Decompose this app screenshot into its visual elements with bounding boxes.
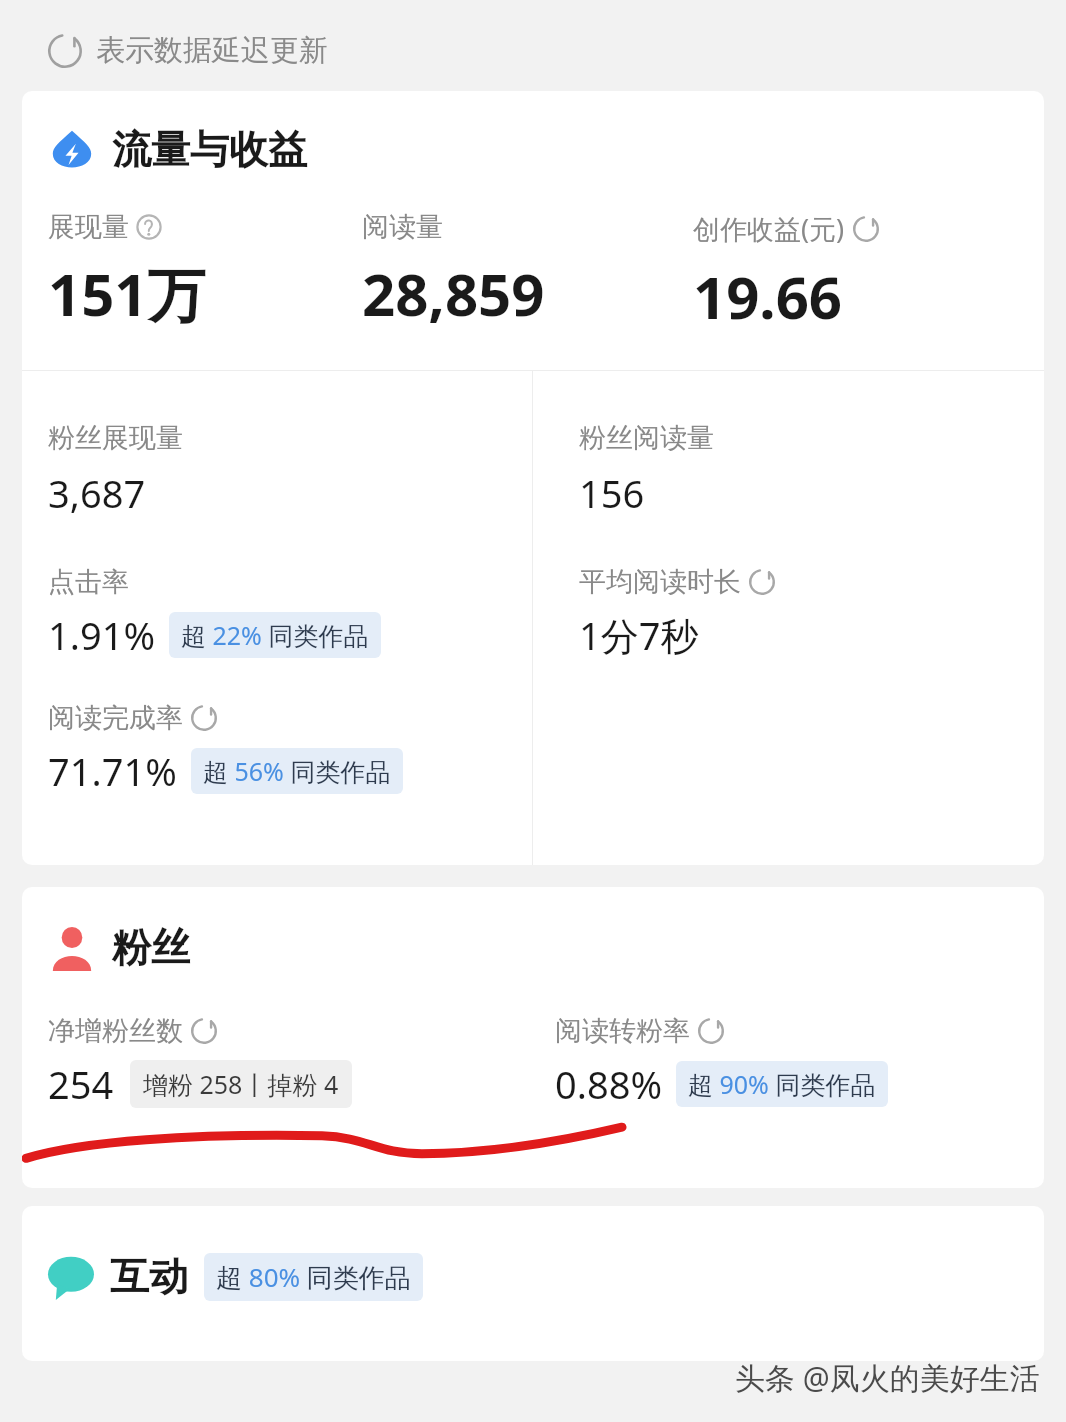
button[interactable]: 粉丝 (22, 887, 1044, 1188)
staticText: 151万 (48, 254, 206, 333)
staticText: 0.88% (555, 1058, 662, 1110)
staticText: 流量与收益 (112, 125, 307, 174)
staticText: 阅读转粉率 (555, 1014, 690, 1048)
staticText: 头条 @凤火的美好生活 (735, 1357, 1040, 1398)
button[interactable]: 增粉 258丨掉粉 4 (130, 1060, 352, 1108)
staticText: 1.91% (48, 609, 155, 661)
staticText: 展现量 (48, 210, 129, 244)
staticText: 互动 (110, 1252, 188, 1301)
staticText: 超 56% 同类作品 (203, 754, 391, 788)
staticText: 阅读完成率 (48, 701, 183, 735)
staticText: 净增粉丝数 (48, 1014, 183, 1048)
button[interactable]: 超 56% 同类作品 (191, 748, 403, 794)
staticText: 粉丝 (112, 923, 190, 972)
staticText: 156 (579, 467, 645, 519)
staticText: 超 80% 同类作品 (216, 1259, 411, 1295)
staticText: 1分7秒 (579, 609, 699, 661)
staticText: 创作收益(元) (693, 210, 845, 247)
button[interactable]: 流量与收益 (22, 91, 1044, 865)
button[interactable]: 超 22% 同类作品 (169, 612, 381, 658)
button[interactable]: 超 90% 同类作品 (676, 1061, 888, 1107)
staticText: 71.71% (48, 745, 177, 797)
staticText: 点击率 (48, 565, 129, 599)
staticText: 超 22% 同类作品 (181, 618, 369, 652)
staticText: 254 (48, 1058, 114, 1110)
staticText: 超 90% 同类作品 (688, 1067, 876, 1101)
staticText: 3,687 (48, 467, 146, 519)
staticText: 平均阅读时长 (579, 565, 741, 599)
staticText: 28,859 (362, 254, 545, 333)
staticText: 粉丝展现量 (48, 421, 183, 455)
staticText: 增粉 258丨掉粉 4 (143, 1067, 339, 1101)
staticText: 19.66 (693, 257, 843, 336)
staticText: 阅读量 (362, 210, 443, 244)
button[interactable]: 超 80% 同类作品 (204, 1253, 423, 1301)
staticText: 表示数据延迟更新 (96, 32, 328, 69)
button[interactable]: 表示数据延迟更新 (48, 32, 1066, 69)
button[interactable]: 互动 (22, 1206, 1044, 1361)
staticText: 粉丝阅读量 (579, 421, 714, 455)
